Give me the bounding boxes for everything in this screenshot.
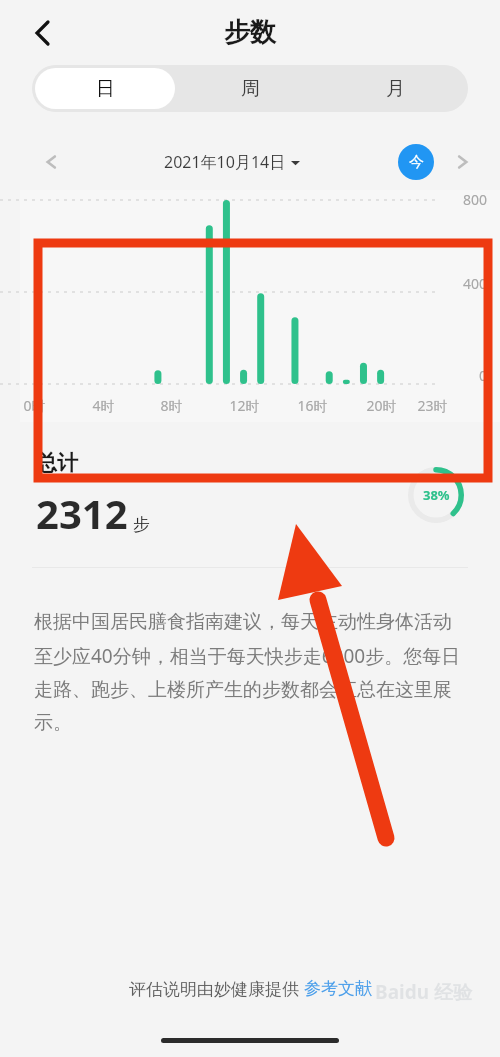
staticText: 参考文献 <box>304 978 372 999</box>
staticText: 步数 <box>224 16 276 49</box>
staticText: 20时 <box>366 396 397 415</box>
staticText: 月 <box>386 77 405 101</box>
staticText: 2312 <box>36 486 128 540</box>
staticText: 400 <box>463 274 488 293</box>
button[interactable]: 2021年10月14日 <box>164 151 300 173</box>
staticText: 日 <box>96 77 115 101</box>
button[interactable]: Back <box>22 13 62 53</box>
button[interactable]: 参考文献 <box>304 978 372 999</box>
staticText: 16时 <box>297 396 328 415</box>
staticText: 根据中国居民膳食指南建议，每天主动性身体活动至少应40分钟，相当于每天快步走60… <box>34 610 466 734</box>
staticText: 4时 <box>92 396 115 415</box>
button[interactable]: 日 <box>35 68 175 109</box>
staticText: 总计 <box>36 450 78 476</box>
staticText: 周 <box>241 77 260 101</box>
staticText: 0时 <box>23 396 46 415</box>
button[interactable]: Next day <box>448 147 478 177</box>
staticText: Baidu 经验 <box>375 979 472 1005</box>
staticText: 2021年10月14日 <box>164 151 286 173</box>
staticText: 800 <box>463 190 488 209</box>
staticText: 评估说明由妙健康提供 <box>129 977 304 1000</box>
staticText: 23时 <box>417 396 448 415</box>
button[interactable]: 周 <box>181 68 320 109</box>
staticText: 38% <box>423 486 450 504</box>
staticText: 8时 <box>160 396 183 415</box>
button[interactable]: 今 <box>398 144 434 180</box>
staticText: 12时 <box>229 396 260 415</box>
staticText: 0 <box>479 366 488 385</box>
button[interactable]: 月 <box>326 68 465 109</box>
staticText: 步 <box>133 514 150 535</box>
button[interactable]: Previous day <box>36 147 66 177</box>
staticText: 今 <box>409 153 424 172</box>
